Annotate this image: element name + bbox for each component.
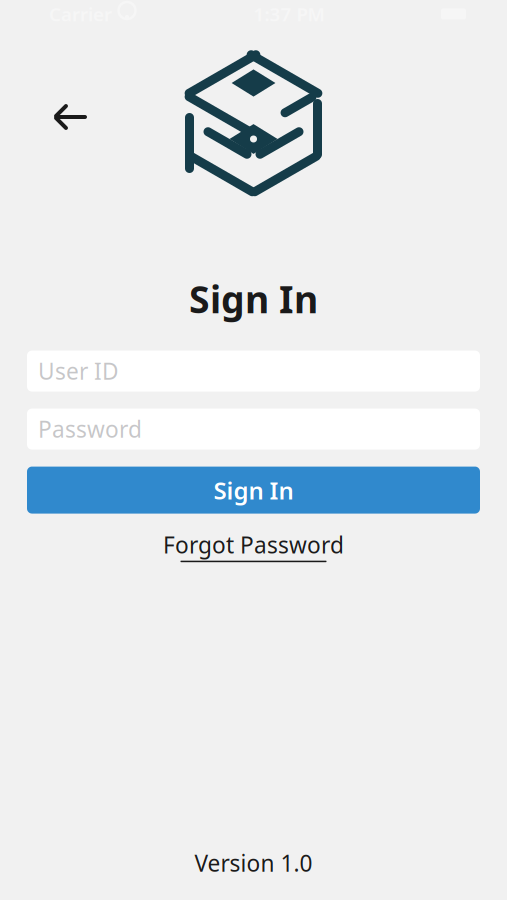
staticText: User ID	[38, 356, 119, 386]
button[interactable]: Sign In	[27, 467, 480, 514]
button[interactable]: Back	[47, 93, 95, 141]
staticText: Sign In	[189, 274, 318, 324]
staticText: Forgot Password	[163, 530, 344, 560]
staticText: Password	[38, 414, 142, 444]
staticText: Version 1.0	[194, 848, 312, 878]
button[interactable]: Forgot Password	[155, 526, 352, 566]
staticText: Sign In	[213, 474, 293, 506]
